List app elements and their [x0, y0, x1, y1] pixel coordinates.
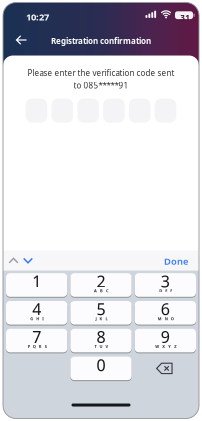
button[interactable]: 7 — [6, 328, 67, 353]
staticText: 7 — [32, 326, 41, 347]
staticText: WXYZ — [155, 344, 176, 349]
button[interactable]: 9 — [135, 328, 196, 353]
staticText: to 085*****91 — [73, 80, 128, 91]
button[interactable]: 6 — [135, 300, 196, 325]
staticText: PQRS — [28, 344, 47, 349]
staticText: 3 — [161, 271, 170, 292]
button[interactable]: 5 — [70, 300, 132, 325]
staticText: 10:27 — [26, 11, 49, 23]
button[interactable]: Done — [3, 250, 27, 263]
button[interactable]: 0 — [70, 356, 132, 381]
button[interactable]: 3 — [135, 273, 196, 297]
staticText: Please enter the verification code sent — [27, 67, 174, 78]
staticText: GHI — [30, 316, 44, 321]
staticText: JKL — [95, 316, 107, 321]
button[interactable] — [3, 250, 14, 257]
button[interactable]: 2 — [70, 273, 132, 297]
staticText: 9 — [161, 326, 170, 347]
button[interactable] — [77, 98, 99, 123]
staticText: 4 — [32, 298, 41, 320]
staticText: ABC — [94, 288, 109, 293]
button[interactable] — [3, 2, 19, 16]
staticText: 6 — [161, 298, 170, 320]
staticText: 2 — [96, 271, 105, 292]
staticText: DEF — [159, 288, 172, 293]
staticText: 0 — [96, 354, 105, 376]
button[interactable] — [3, 250, 14, 257]
staticText: 1 — [32, 271, 41, 292]
staticText: TUV — [94, 344, 108, 349]
staticText: 8 — [96, 326, 105, 347]
staticText: MNO — [158, 316, 174, 321]
staticText: Registration confirmation — [51, 35, 151, 46]
button[interactable]: 1 — [6, 273, 67, 297]
button[interactable]: 8 — [70, 328, 132, 353]
staticText: 31 — [180, 12, 190, 23]
button[interactable]: 4 — [6, 300, 67, 325]
button[interactable] — [103, 98, 125, 123]
button[interactable] — [135, 357, 196, 380]
staticText: Done — [164, 255, 188, 267]
staticText: 5 — [96, 298, 105, 320]
